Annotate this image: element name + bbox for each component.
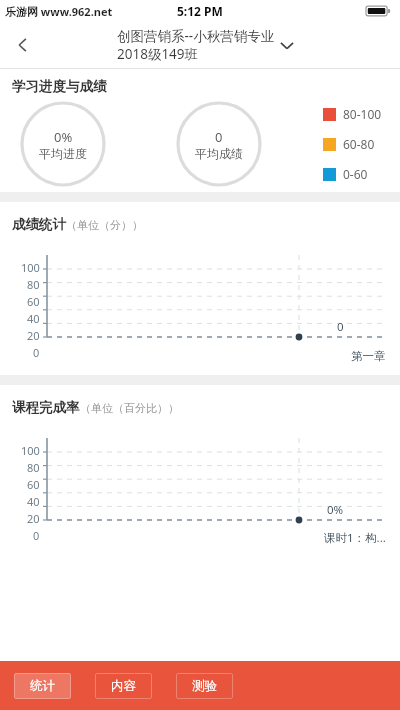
staticText: 测验 — [192, 678, 217, 694]
staticText: 0% — [54, 128, 73, 146]
staticText: 20 — [27, 328, 40, 343]
button[interactable]: 创图营销系--小秋营销专业 — [117, 27, 295, 63]
staticText: （单位（分）） — [66, 218, 143, 232]
staticText: 第一章 — [351, 349, 386, 363]
staticText: 60 — [27, 294, 40, 309]
staticText: 课时1：构... — [324, 530, 386, 546]
staticText: 0 — [33, 528, 40, 543]
staticText: 乐游网 www.962.net — [5, 4, 113, 19]
staticText: 0 — [33, 345, 40, 360]
staticText: 课程完成率 — [12, 399, 80, 416]
staticText: 0% — [327, 502, 344, 518]
staticText: 平均成绩 — [195, 146, 243, 161]
staticText: 0-60 — [343, 166, 368, 182]
staticText: 80 — [27, 277, 40, 292]
staticText: 100 — [21, 443, 40, 458]
staticText: 80 — [27, 460, 40, 475]
staticText: 40 — [27, 494, 40, 509]
staticText: 20 — [27, 511, 40, 526]
staticText: 统计 — [30, 678, 55, 694]
staticText: 创图营销系--小秋营销专业 — [117, 27, 275, 45]
staticText: 60-80 — [343, 136, 375, 152]
staticText: 40 — [27, 311, 40, 326]
staticText: 成绩统计 — [12, 216, 66, 233]
staticText: 2018级149班 — [117, 45, 199, 63]
button[interactable]: 内容 — [95, 673, 152, 699]
staticText: 内容 — [111, 678, 136, 694]
staticText: 0 — [337, 319, 344, 335]
staticText: 学习进度与成绩 — [12, 78, 107, 95]
staticText: 100 — [21, 260, 40, 275]
staticText: 80-100 — [343, 106, 382, 122]
button[interactable]: 统计 — [14, 673, 71, 699]
button[interactable]: 测验 — [176, 673, 233, 699]
button[interactable]: Back — [0, 22, 46, 68]
staticText: 5:12 PM — [177, 3, 223, 19]
staticText: 平均进度 — [39, 146, 87, 161]
staticText: （单位（百分比）） — [80, 401, 179, 415]
staticText: 60 — [27, 477, 40, 492]
staticText: 0 — [215, 128, 223, 146]
